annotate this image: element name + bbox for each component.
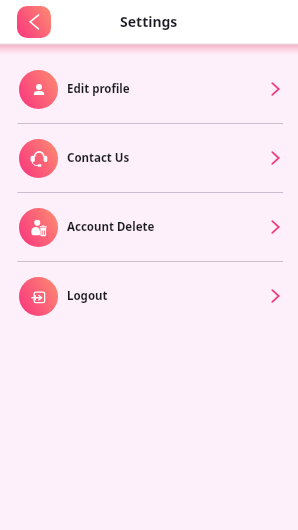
- button[interactable]: Account Delete: [0, 193, 298, 261]
- button[interactable]: Back: [17, 6, 51, 38]
- staticText: Logout: [67, 288, 108, 304]
- button[interactable]: Edit profile: [0, 55, 298, 123]
- staticText: Account Delete: [67, 219, 155, 235]
- staticText: Contact Us: [67, 150, 130, 166]
- staticText: Settings: [120, 12, 178, 31]
- button[interactable]: Contact Us: [0, 124, 298, 192]
- staticText: Edit profile: [67, 81, 130, 97]
- button[interactable]: Logout: [0, 262, 298, 330]
